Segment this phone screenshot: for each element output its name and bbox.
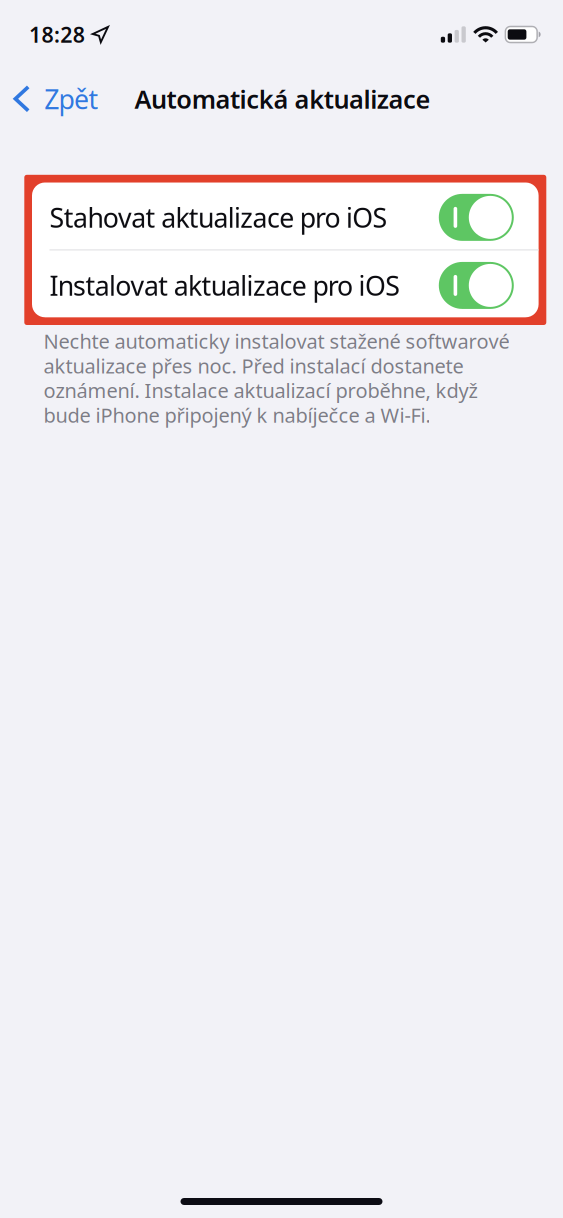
staticText: Nechte automaticky instalovat stažené so… (43, 328, 509, 428)
button[interactable]: Zpět (0, 74, 110, 123)
staticText: 18:28 (29, 20, 85, 49)
staticText: Instalovat aktualizace pro iOS (49, 268, 400, 303)
button[interactable]: Zapnuto (32, 251, 539, 317)
staticText: Zpět (44, 81, 98, 116)
staticText: Stahovat aktualizace pro iOS (49, 200, 388, 235)
staticText: Automatická aktualizace (134, 82, 431, 116)
button[interactable]: Zapnuto (32, 182, 539, 249)
